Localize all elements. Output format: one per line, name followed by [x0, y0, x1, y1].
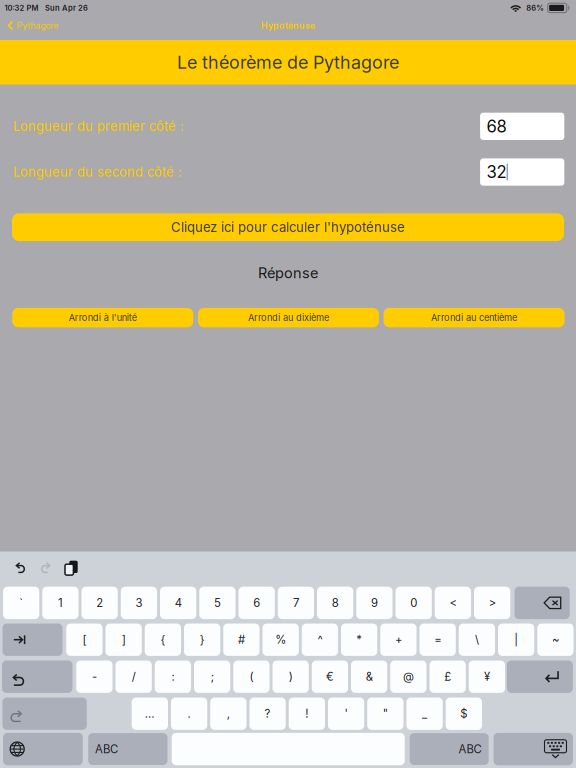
button[interactable]: 4 — [160, 587, 196, 619]
button[interactable]: | — [498, 623, 534, 656]
button[interactable]: & — [351, 660, 387, 693]
button[interactable]: Arrondi à l'unité — [12, 308, 193, 327]
button[interactable]: ABC — [410, 733, 489, 765]
button[interactable]: : — [155, 660, 191, 693]
button[interactable]: - — [76, 660, 113, 693]
staticText: . — [188, 707, 191, 720]
button[interactable]: [ — [66, 623, 103, 656]
button[interactable]: * — [341, 623, 377, 656]
button[interactable]: Shift — [2, 660, 72, 693]
staticText: - — [92, 670, 97, 683]
button[interactable]: ) — [272, 660, 309, 693]
button[interactable]: { — [145, 623, 181, 656]
staticText: = — [434, 633, 441, 646]
button[interactable]: $ — [446, 697, 482, 730]
staticText: Pythagore — [17, 20, 59, 31]
button[interactable]: > — [474, 587, 510, 619]
button[interactable]: 6 — [238, 587, 275, 619]
button[interactable]: Pythagore — [0, 18, 70, 33]
button[interactable]: } — [184, 623, 220, 656]
button[interactable]: % — [262, 623, 299, 656]
staticText: £ — [444, 670, 451, 683]
staticText: ` — [19, 596, 23, 610]
staticText: 5 — [214, 596, 221, 610]
staticText: } — [200, 633, 205, 646]
button[interactable]: Delete — [514, 587, 570, 619]
button[interactable]: @ — [390, 660, 427, 693]
staticText: , — [227, 707, 230, 720]
button[interactable]: 8 — [317, 587, 353, 619]
button[interactable]: ~ — [537, 623, 573, 656]
button[interactable]: " — [367, 697, 403, 730]
button[interactable]: Hide keyboard — [493, 733, 573, 765]
button[interactable]: ' — [328, 697, 364, 730]
staticText: * — [356, 633, 362, 646]
button[interactable]: = — [419, 623, 456, 656]
button[interactable]: 5 — [199, 587, 236, 619]
button[interactable]: ^ — [302, 623, 338, 656]
button[interactable]: Cliquez ici pour calculer l'hypoténuse — [12, 213, 564, 241]
staticText: Cliquez ici pour calculer l'hypoténuse — [171, 219, 405, 235]
button[interactable]: Tab — [2, 623, 62, 656]
staticText: ? — [265, 707, 271, 720]
button[interactable]: Undo — [15, 561, 26, 575]
staticText: 86% — [526, 3, 544, 12]
staticText: ' — [345, 707, 348, 720]
staticText: € — [326, 670, 334, 683]
staticText: @ — [403, 670, 414, 683]
button[interactable]: ( — [233, 660, 270, 693]
staticText: … — [145, 707, 155, 720]
staticText: 32 — [487, 162, 507, 182]
button[interactable]: < — [435, 587, 471, 619]
button[interactable]: # — [223, 623, 260, 656]
button[interactable]: ? — [249, 697, 286, 730]
button[interactable]: . — [171, 697, 207, 730]
staticText: 2 — [96, 596, 103, 610]
button[interactable]: Shift — [2, 697, 87, 730]
button[interactable]: … — [132, 697, 168, 730]
button[interactable]: ¥ — [469, 660, 505, 693]
button[interactable]: € — [312, 660, 348, 693]
button[interactable]: ; — [194, 660, 230, 693]
staticText: [ — [82, 633, 86, 646]
button[interactable]: ABC — [88, 733, 167, 765]
button[interactable]: Arrondi au centième — [383, 308, 564, 327]
button[interactable]: 7 — [278, 587, 314, 619]
staticText: { — [160, 633, 165, 646]
button[interactable]: £ — [429, 660, 466, 693]
button[interactable]: Return — [507, 660, 573, 693]
button[interactable]: ` — [3, 587, 39, 619]
button[interactable]: ] — [105, 623, 142, 656]
button[interactable]: Arrondi au dixième — [198, 308, 379, 327]
button[interactable]: \ — [459, 623, 495, 656]
staticText: ; — [211, 670, 214, 683]
button[interactable]: , — [210, 697, 246, 730]
staticText: Arrondi au centième — [431, 312, 517, 323]
button[interactable]: Next keyboard — [3, 733, 83, 765]
button[interactable]: _ — [406, 697, 443, 730]
staticText: $ — [460, 707, 467, 720]
staticText: 1 — [58, 596, 63, 610]
staticText: < — [449, 596, 456, 610]
staticText: ^ — [317, 633, 322, 646]
button[interactable]: 9 — [356, 587, 393, 619]
button[interactable]: Paste — [65, 561, 78, 575]
staticText: Hypoténuse — [261, 20, 315, 31]
staticText: ABC — [95, 742, 118, 756]
staticText: 10:32 PM — [5, 3, 39, 12]
button[interactable]: + — [380, 623, 417, 656]
button[interactable]: / — [115, 660, 152, 693]
staticText: Longueur du second côté : — [13, 164, 182, 180]
staticText: 68 — [487, 116, 507, 136]
staticText: " — [383, 707, 388, 720]
button[interactable]: ! — [289, 697, 325, 730]
button[interactable]: 0 — [395, 587, 432, 619]
staticText: 3 — [135, 596, 142, 610]
button[interactable]: 2 — [81, 587, 118, 619]
staticText: 4 — [175, 596, 182, 610]
button[interactable]: 3 — [121, 587, 157, 619]
button[interactable]: 1 — [42, 587, 79, 619]
staticText: ] — [122, 633, 126, 646]
button[interactable]: Redo — [40, 561, 51, 575]
